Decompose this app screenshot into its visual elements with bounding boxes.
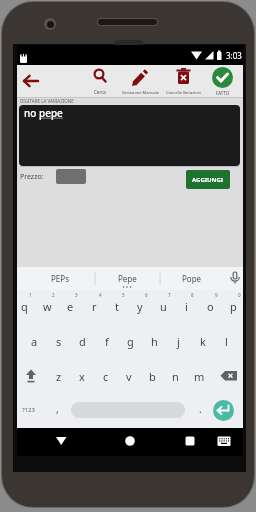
button[interactable] xyxy=(217,363,241,389)
staticText: . xyxy=(199,402,202,416)
button[interactable] xyxy=(22,74,40,88)
button[interactable]: . xyxy=(191,395,209,423)
staticText: 7 xyxy=(168,292,171,298)
button[interactable] xyxy=(225,267,243,290)
staticText: o xyxy=(207,299,214,314)
staticText: n xyxy=(172,369,179,384)
button[interactable]: ?123 xyxy=(17,396,39,424)
staticText: 1 xyxy=(29,292,32,298)
staticText: DIGITARE LA VARIAZIONE xyxy=(20,98,74,104)
staticText: 4 xyxy=(99,292,102,298)
staticText: 5 xyxy=(122,292,125,298)
button[interactable] xyxy=(56,169,86,184)
staticText: k xyxy=(200,334,206,349)
button[interactable]: n xyxy=(164,361,187,391)
staticText: e xyxy=(67,299,74,314)
staticText: Pope xyxy=(182,273,202,284)
button[interactable]: z xyxy=(47,361,70,391)
button[interactable]: j xyxy=(167,326,190,356)
staticText: Variazione Manuale xyxy=(122,90,159,95)
staticText: d xyxy=(79,334,86,349)
button[interactable]: i xyxy=(175,292,197,320)
button[interactable] xyxy=(71,402,185,418)
button[interactable] xyxy=(216,433,232,449)
staticText: b xyxy=(149,369,156,384)
button[interactable]: FATTO xyxy=(210,66,235,96)
staticText: 0 xyxy=(238,292,241,298)
staticText: 3:03 xyxy=(226,50,242,61)
button[interactable] xyxy=(19,363,43,389)
button[interactable]: e xyxy=(59,292,81,320)
staticText: i xyxy=(185,299,188,314)
staticText: m xyxy=(194,369,205,384)
staticText: l xyxy=(225,334,228,349)
button[interactable]: Pepe xyxy=(102,269,152,288)
button[interactable]: x xyxy=(70,361,93,391)
button[interactable]: a xyxy=(23,326,46,356)
staticText: x xyxy=(79,369,85,384)
staticText: f xyxy=(105,334,109,349)
staticText: 2 xyxy=(52,292,55,298)
staticText: c xyxy=(103,369,109,384)
staticText: u xyxy=(160,299,167,314)
button[interactable] xyxy=(53,433,69,449)
button[interactable]: q xyxy=(13,292,35,320)
staticText: Cancella Variazioni xyxy=(166,90,202,95)
button[interactable]: Variazione Manuale xyxy=(117,66,163,95)
button[interactable]: h xyxy=(143,326,166,356)
button[interactable]: f xyxy=(95,326,118,356)
staticText: p xyxy=(230,299,237,314)
staticText: v xyxy=(126,369,132,384)
staticText: 3 xyxy=(75,292,78,298)
staticText: 6 xyxy=(145,292,148,298)
staticText: g xyxy=(127,334,134,349)
button[interactable] xyxy=(122,433,138,449)
staticText: no pepe xyxy=(24,106,63,120)
staticText: 8 xyxy=(191,292,194,298)
staticText: q xyxy=(21,299,28,314)
button[interactable]: s xyxy=(47,326,70,356)
button[interactable]: y xyxy=(129,292,151,320)
staticText: y xyxy=(137,299,143,314)
button[interactable]: Pope xyxy=(167,269,217,288)
button[interactable]: p xyxy=(222,292,244,320)
button[interactable]: g xyxy=(119,326,142,356)
button[interactable]: Cerca xyxy=(85,66,115,95)
button[interactable]: AGGIUNGI xyxy=(186,170,230,189)
button[interactable]: b xyxy=(141,361,164,391)
staticText: FATTO xyxy=(216,90,230,96)
button[interactable]: l xyxy=(215,326,238,356)
button[interactable]: Cancella Variazioni xyxy=(162,66,205,95)
button[interactable]: t xyxy=(106,292,128,320)
staticText: AGGIUNGI xyxy=(192,176,224,184)
button[interactable]: d xyxy=(71,326,94,356)
staticText: s xyxy=(56,334,62,349)
staticText: PEPs xyxy=(51,273,69,284)
button[interactable]: m xyxy=(188,361,211,391)
staticText: Pepe xyxy=(118,273,137,284)
staticText: z xyxy=(56,369,62,384)
button[interactable]: v xyxy=(117,361,140,391)
button[interactable] xyxy=(182,433,198,449)
staticText: j xyxy=(177,334,180,349)
button[interactable]: k xyxy=(191,326,214,356)
staticText: a xyxy=(31,334,38,349)
staticText: t xyxy=(115,299,119,314)
button[interactable]: w xyxy=(36,292,58,320)
button[interactable]: c xyxy=(94,361,117,391)
button[interactable]: no pepe xyxy=(19,105,240,166)
staticText: w xyxy=(43,299,52,314)
button[interactable]: , xyxy=(48,395,66,423)
staticText: ?123 xyxy=(22,406,35,414)
button[interactable] xyxy=(213,400,234,421)
button[interactable]: PEPs xyxy=(35,269,85,288)
staticText: 9 xyxy=(215,292,218,298)
staticText: Cerca xyxy=(94,89,106,95)
button[interactable]: u xyxy=(152,292,174,320)
staticText: r xyxy=(92,299,97,314)
button[interactable]: o xyxy=(199,292,221,320)
staticText: Prezzo: xyxy=(20,172,44,182)
button[interactable]: r xyxy=(83,292,105,320)
staticText: , xyxy=(56,402,59,416)
staticText: h xyxy=(151,334,158,349)
